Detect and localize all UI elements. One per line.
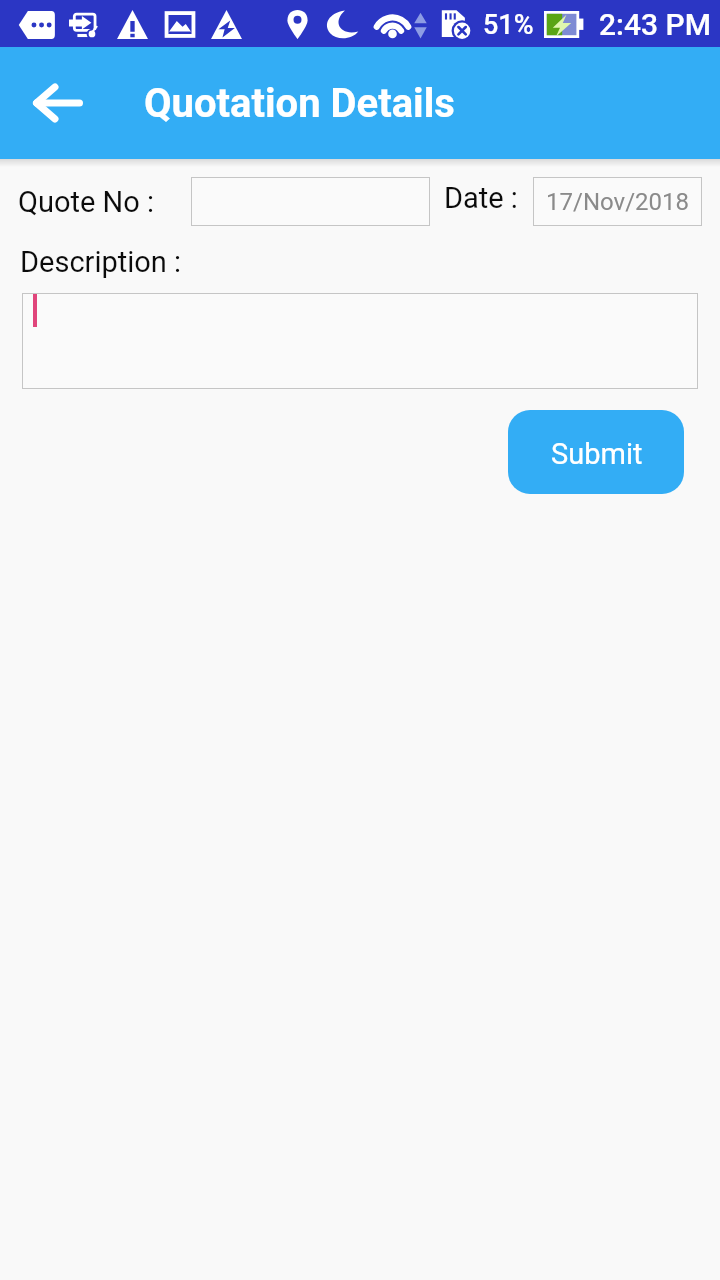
button[interactable]: Back bbox=[19, 65, 95, 141]
staticText: 51% bbox=[483, 9, 534, 41]
staticText: Submit bbox=[551, 437, 643, 471]
staticText: Quote No : bbox=[18, 185, 154, 219]
button[interactable]: Submit bbox=[508, 410, 684, 494]
staticText: Quotation Details bbox=[144, 80, 455, 127]
staticText: 2:43 PM bbox=[599, 7, 711, 42]
staticText: Description : bbox=[20, 245, 182, 279]
button[interactable]: Quote number input bbox=[191, 177, 430, 226]
button[interactable]: Description input bbox=[22, 293, 698, 389]
staticText: Date : bbox=[444, 181, 518, 215]
staticText: 17/Nov/2018 bbox=[546, 188, 689, 216]
button[interactable]: 17/Nov/2018 bbox=[533, 177, 702, 226]
